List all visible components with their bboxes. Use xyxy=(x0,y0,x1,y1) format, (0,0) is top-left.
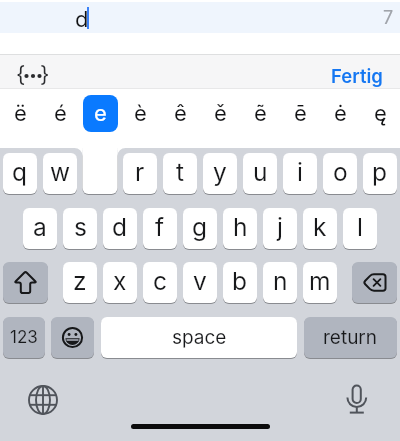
staticText: p xyxy=(372,157,388,187)
staticText: a xyxy=(33,212,47,242)
staticText: space xyxy=(172,326,227,349)
button[interactable]: k xyxy=(303,208,337,249)
button[interactable]: space xyxy=(101,317,297,358)
button[interactable]: ę xyxy=(360,95,400,132)
button[interactable] xyxy=(26,383,60,417)
staticText: 123 xyxy=(10,327,38,348)
staticText: z xyxy=(73,266,87,296)
button[interactable]: ė xyxy=(320,95,360,132)
button[interactable]: è xyxy=(120,95,160,132)
button[interactable]: s xyxy=(63,208,97,249)
staticText: q xyxy=(12,157,28,187)
button[interactable]: ě xyxy=(200,95,240,132)
staticText: w xyxy=(50,157,71,187)
button[interactable]: { xyxy=(14,60,52,90)
staticText: y xyxy=(213,157,227,187)
button[interactable]: y xyxy=(203,153,237,194)
staticText: ė xyxy=(334,100,347,127)
button[interactable]: l xyxy=(343,208,377,249)
button[interactable]: r xyxy=(123,153,157,194)
button[interactable]: q xyxy=(3,153,37,194)
staticText: ē xyxy=(294,100,307,127)
button[interactable]: b xyxy=(223,262,257,303)
button[interactable]: w xyxy=(43,153,77,194)
staticText: u xyxy=(253,157,268,187)
staticText: ẽ xyxy=(254,100,267,127)
staticText: s xyxy=(74,212,87,242)
button[interactable]: ẽ xyxy=(240,95,280,132)
button[interactable]: c xyxy=(143,262,177,303)
button[interactable]: ê xyxy=(160,95,200,132)
button[interactable]: o xyxy=(323,153,357,194)
staticText: d xyxy=(112,212,128,242)
button[interactable]: t xyxy=(163,153,197,194)
staticText: x xyxy=(113,266,127,296)
staticText: ę xyxy=(374,100,387,127)
staticText: h xyxy=(233,212,248,242)
button[interactable]: z xyxy=(63,262,97,303)
staticText: b xyxy=(232,266,248,296)
staticText: k xyxy=(313,212,327,242)
staticText: f xyxy=(155,212,165,242)
button[interactable] xyxy=(352,262,397,303)
staticText: v xyxy=(193,266,207,296)
staticText: ë xyxy=(14,100,27,127)
button[interactable] xyxy=(0,2,400,33)
button[interactable]: v xyxy=(183,262,217,303)
button[interactable]: u xyxy=(243,153,277,194)
staticText: ě xyxy=(214,100,227,127)
button[interactable]: e xyxy=(83,95,118,132)
staticText: o xyxy=(333,157,348,187)
staticText: m xyxy=(309,266,331,296)
staticText: è xyxy=(134,100,147,127)
staticText: ê xyxy=(174,100,187,127)
button[interactable]: é xyxy=(40,95,80,132)
button[interactable]: ë xyxy=(0,95,40,132)
staticText: { xyxy=(16,61,26,88)
button[interactable]: return xyxy=(304,317,397,358)
button[interactable]: i xyxy=(283,153,317,194)
staticText: j xyxy=(277,212,283,242)
staticText: i xyxy=(297,157,303,187)
button[interactable]: Fertig xyxy=(331,65,383,87)
staticText: g xyxy=(192,212,208,242)
staticText: n xyxy=(273,266,288,296)
button[interactable]: ē xyxy=(280,95,320,132)
button[interactable]: 123 xyxy=(3,317,45,358)
button[interactable]: d xyxy=(103,208,137,249)
button[interactable] xyxy=(3,262,48,303)
staticText: c xyxy=(153,266,167,296)
staticText: return xyxy=(323,326,378,349)
staticText: Fertig xyxy=(331,65,383,87)
staticText: e xyxy=(94,100,107,127)
staticText: r xyxy=(135,157,145,187)
button[interactable]: p xyxy=(363,153,397,194)
staticText: 7 xyxy=(383,7,394,29)
button[interactable]: f xyxy=(143,208,177,249)
staticText: } xyxy=(40,61,50,88)
staticText: t xyxy=(176,157,185,187)
button[interactable]: h xyxy=(223,208,257,249)
button[interactable] xyxy=(51,317,94,358)
staticText: é xyxy=(54,100,67,127)
staticText: l xyxy=(357,212,363,242)
button[interactable]: x xyxy=(103,262,137,303)
button[interactable]: a xyxy=(23,208,57,249)
staticText: d xyxy=(75,6,89,33)
button[interactable]: n xyxy=(263,262,297,303)
button[interactable] xyxy=(342,382,372,416)
button[interactable]: m xyxy=(303,262,337,303)
button[interactable]: j xyxy=(263,208,297,249)
button[interactable]: g xyxy=(183,208,217,249)
